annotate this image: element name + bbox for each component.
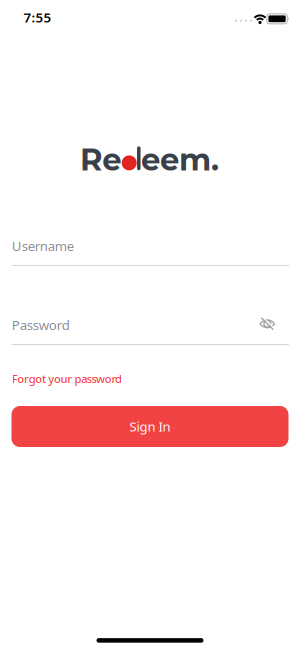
staticText: 7:55	[23, 8, 51, 26]
button[interactable]: Password	[11, 314, 289, 345]
button[interactable]: Show password	[258, 315, 276, 333]
staticText: Password	[12, 316, 70, 334]
staticText: Re	[80, 141, 121, 178]
staticText: Sign In	[129, 418, 170, 435]
button[interactable]: Username	[11, 235, 289, 266]
button[interactable]: Forgot your password	[12, 371, 289, 386]
button[interactable]: Sign In	[11, 406, 288, 447]
staticText: Forgot your password	[12, 371, 122, 386]
staticText: eem.	[141, 141, 219, 178]
staticText: Username	[12, 237, 74, 255]
